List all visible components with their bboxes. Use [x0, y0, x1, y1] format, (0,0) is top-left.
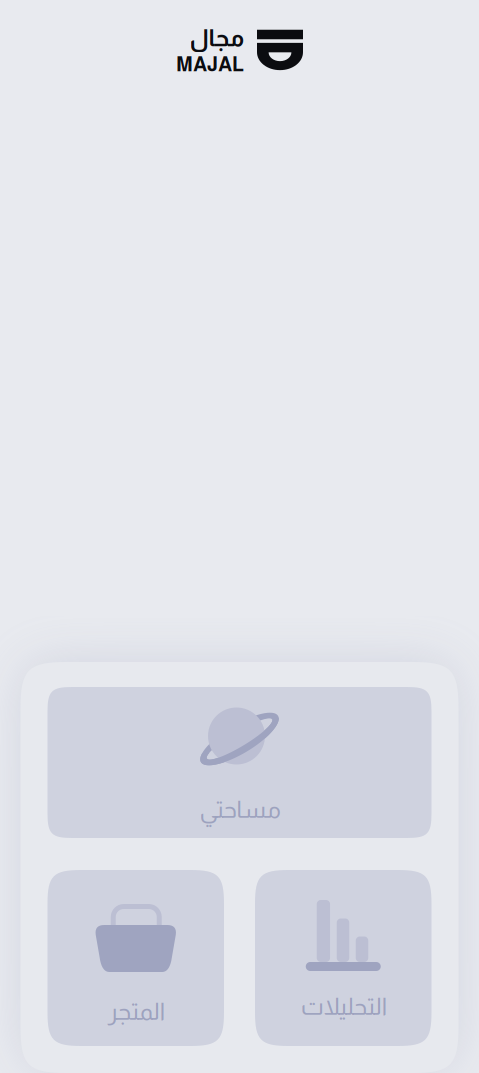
- staticText: المتجر: [107, 998, 164, 1025]
- staticText: مجال: [189, 24, 244, 51]
- staticText: مساحتي: [199, 796, 280, 823]
- button[interactable]: Analytics: [255, 870, 431, 1046]
- button[interactable]: Store: [47, 870, 224, 1046]
- button[interactable]: My Space: [47, 687, 431, 838]
- staticText: MAJAL: [176, 53, 244, 75]
- staticText: التحليلات: [300, 993, 386, 1020]
